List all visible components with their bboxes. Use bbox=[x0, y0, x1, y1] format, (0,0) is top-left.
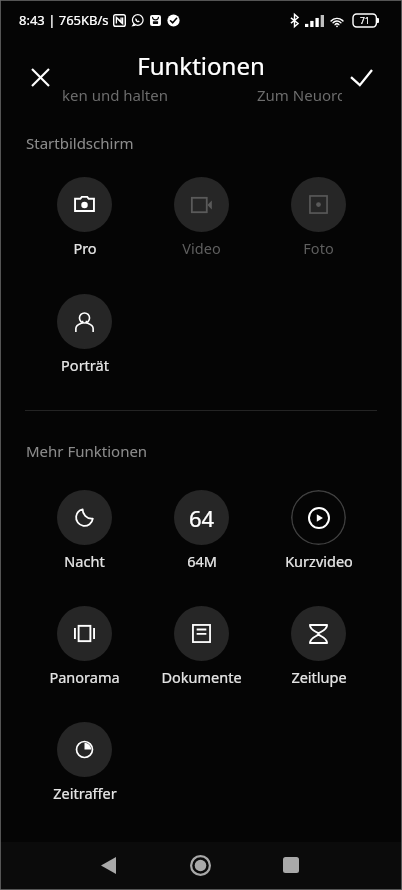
button[interactable]: Close bbox=[24, 61, 57, 94]
button[interactable]: Zeitraffer bbox=[57, 722, 112, 777]
button[interactable]: Recents bbox=[267, 841, 315, 889]
staticText: Mehr Funktionen bbox=[26, 441, 148, 461]
staticText: Foto bbox=[303, 238, 334, 258]
staticText: 64M bbox=[187, 551, 217, 571]
button[interactable]: Dokumente bbox=[174, 606, 229, 661]
button[interactable]: Zeitlupe bbox=[291, 606, 346, 661]
button[interactable]: Kurzvideo bbox=[291, 490, 346, 545]
button[interactable]: Pro bbox=[57, 177, 112, 232]
staticText: 64 bbox=[189, 503, 215, 533]
staticText: Dokumente bbox=[161, 667, 242, 687]
button[interactable]: Video bbox=[174, 177, 229, 232]
staticText: Funktionen bbox=[0, 49, 402, 82]
staticText: Pro bbox=[73, 238, 97, 258]
button[interactable]: Porträt bbox=[57, 294, 112, 349]
button[interactable]: Foto bbox=[291, 177, 346, 232]
staticText: Video bbox=[182, 238, 221, 258]
staticText: Kurzvideo bbox=[285, 551, 353, 571]
staticText: ken und halten bbox=[62, 85, 169, 105]
staticText: Nacht bbox=[64, 551, 105, 571]
staticText: 71 bbox=[360, 15, 370, 27]
staticText: Porträt bbox=[61, 355, 109, 375]
button[interactable]: 64M bbox=[174, 490, 229, 545]
button[interactable]: Confirm bbox=[345, 61, 378, 94]
button[interactable]: Panorama bbox=[57, 606, 112, 661]
button[interactable]: Back bbox=[84, 841, 132, 889]
staticText: 8:43 | 765KB/s bbox=[19, 11, 109, 29]
button[interactable]: Nacht bbox=[57, 490, 112, 545]
button[interactable]: Home bbox=[176, 841, 224, 889]
staticText: Zum Neuordnen bbox=[257, 85, 342, 105]
staticText: Panorama bbox=[49, 667, 120, 687]
staticText: Zeitraffer bbox=[53, 783, 117, 803]
staticText: Startbildschirm bbox=[26, 133, 134, 153]
staticText: Zeitlupe bbox=[291, 667, 347, 687]
